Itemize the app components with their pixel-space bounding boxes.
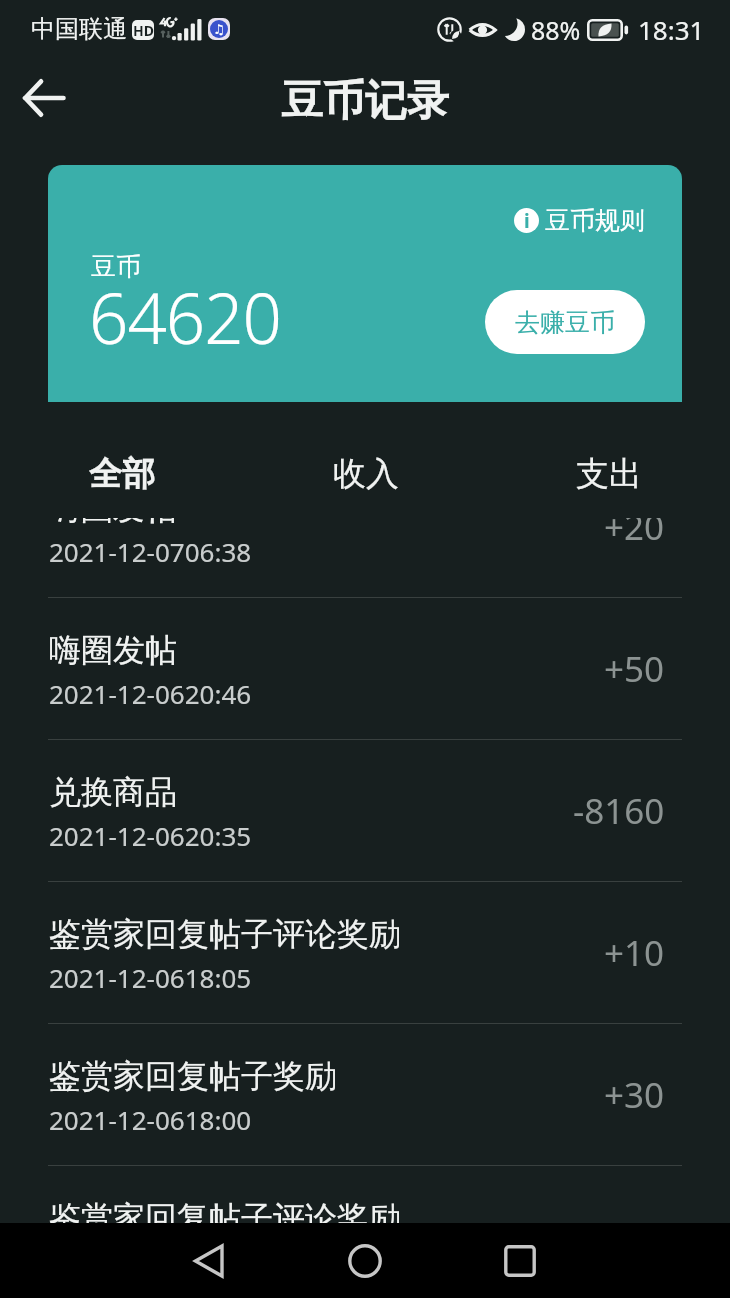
staticText: +50 bbox=[604, 645, 665, 693]
staticText: 中国联通 bbox=[31, 14, 127, 44]
button[interactable]: Back bbox=[168, 1223, 248, 1298]
button[interactable]: 去赚豆币 bbox=[485, 290, 645, 354]
staticText: +20 bbox=[604, 503, 665, 551]
staticText: 2021-12-0618:05 bbox=[49, 960, 252, 995]
staticText: 嗨圈发帖 bbox=[49, 630, 177, 670]
button[interactable]: 嗨圈发帖 bbox=[0, 456, 730, 598]
staticText: 64620 bbox=[89, 270, 281, 364]
staticText: 2021-12-0620:46 bbox=[49, 676, 252, 711]
button[interactable]: 鉴赏家回复帖子奖励 bbox=[0, 1024, 730, 1166]
staticText: 18:31 bbox=[638, 12, 705, 47]
staticText: 嗨圈发帖 bbox=[49, 488, 177, 528]
staticText: +30 bbox=[604, 1071, 665, 1119]
button[interactable]: 兑换商品 bbox=[0, 740, 730, 882]
staticText: 鉴赏家回复帖子评论奖励 bbox=[49, 1198, 401, 1223]
button[interactable]: Home bbox=[325, 1223, 405, 1298]
staticText: 全部 bbox=[89, 453, 155, 495]
button[interactable]: 收入 bbox=[244, 450, 487, 498]
button[interactable]: 嗨圈发帖 bbox=[0, 598, 730, 740]
staticText: +10 bbox=[604, 929, 665, 977]
button[interactable]: 全部 bbox=[0, 450, 244, 498]
staticText: 2021-12-0706:38 bbox=[49, 534, 252, 569]
staticText: ♫ bbox=[213, 22, 225, 37]
staticText: 豆币 bbox=[91, 251, 141, 282]
button[interactable]: 鉴赏家回复帖子评论奖励 bbox=[0, 1166, 730, 1223]
staticText: HD bbox=[133, 21, 154, 40]
button[interactable]: 鉴赏家回复帖子评论奖励 bbox=[0, 882, 730, 1024]
staticText: 兑换商品 bbox=[49, 772, 177, 812]
button[interactable]: i bbox=[514, 205, 645, 236]
staticText: 88% bbox=[531, 13, 581, 47]
staticText: 收入 bbox=[333, 453, 399, 495]
button[interactable]: Recents bbox=[480, 1223, 560, 1298]
staticText: 去赚豆币 bbox=[515, 307, 615, 338]
staticText: 豆币规则 bbox=[545, 205, 645, 236]
staticText: i bbox=[524, 208, 530, 233]
button[interactable]: 支出 bbox=[487, 450, 730, 498]
staticText: 2021-12-0620:35 bbox=[49, 818, 252, 853]
staticText: 2021-12-0618:00 bbox=[49, 1102, 252, 1137]
staticText: 鉴赏家回复帖子奖励 bbox=[49, 1056, 337, 1096]
staticText: 支出 bbox=[576, 453, 642, 495]
staticText: -8160 bbox=[573, 787, 665, 835]
staticText: 豆币记录 bbox=[281, 75, 449, 128]
button[interactable]: Back bbox=[4, 58, 84, 138]
staticText: 鉴赏家回复帖子评论奖励 bbox=[49, 914, 401, 954]
